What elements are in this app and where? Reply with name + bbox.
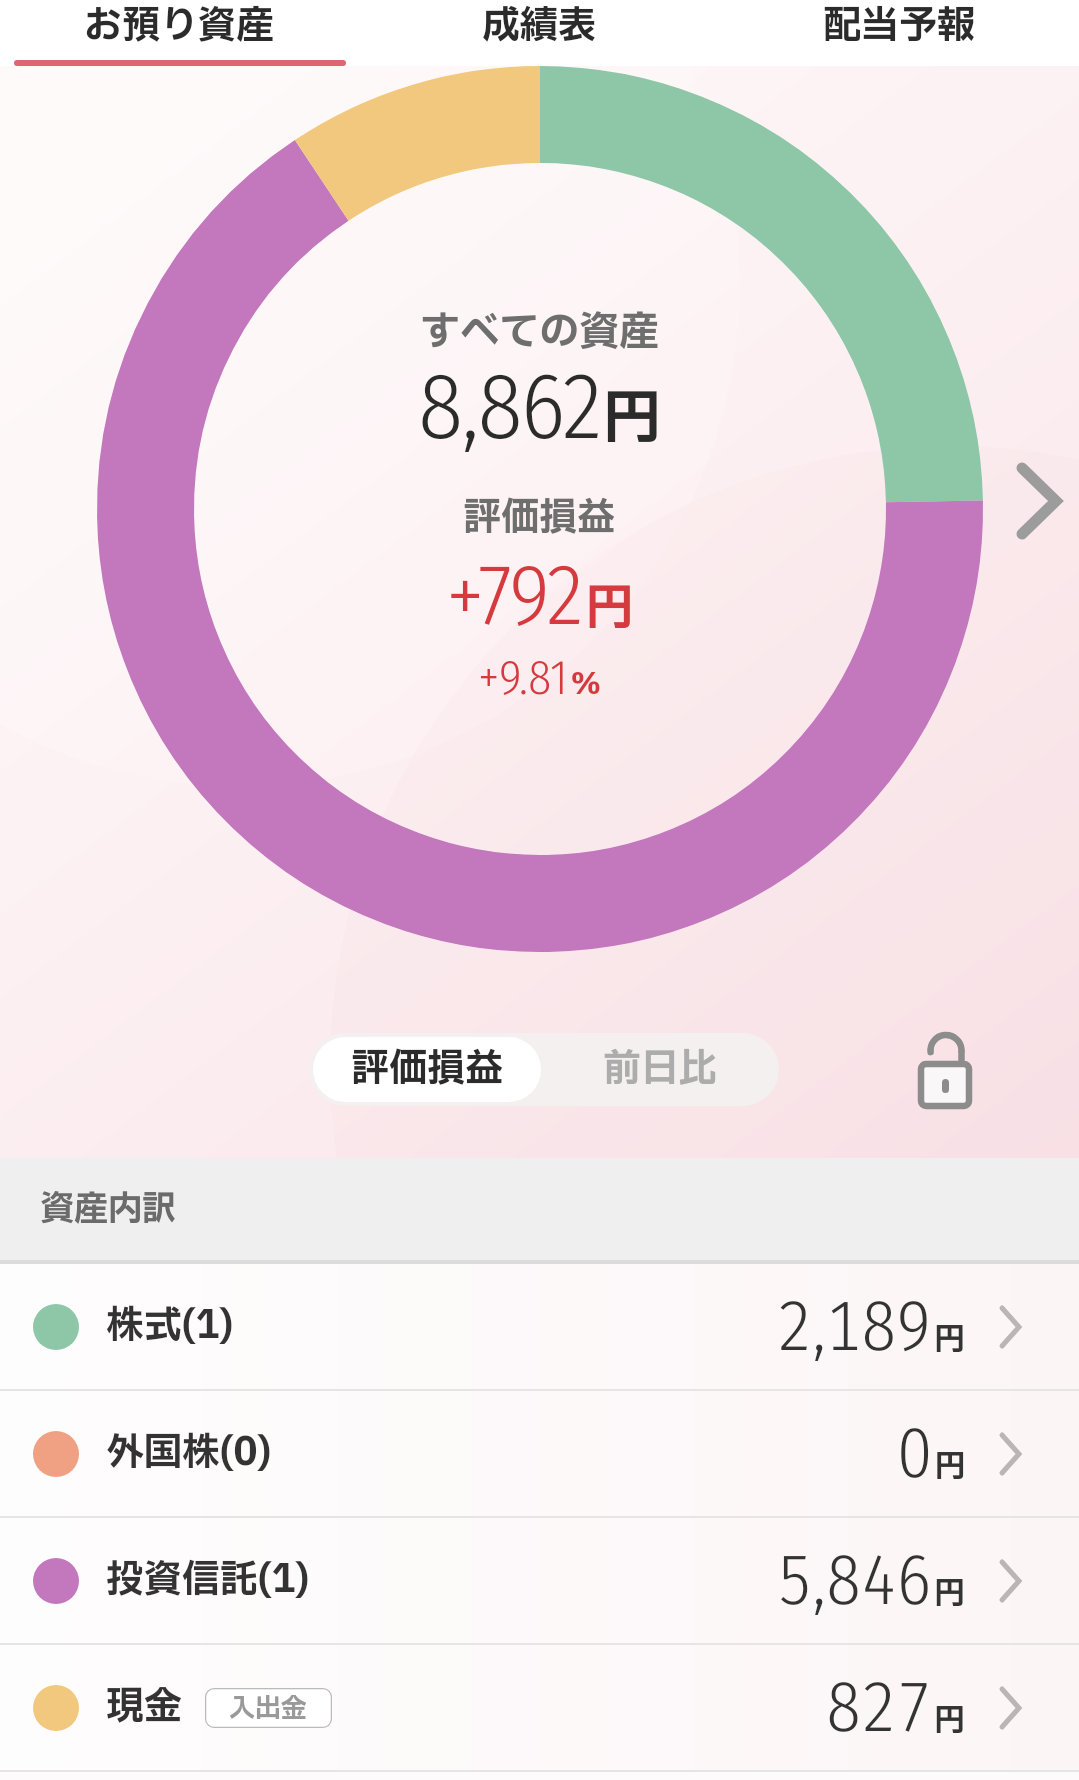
staticText: 5,846 円 [777, 1539, 966, 1623]
staticText: 外国株(0) [106, 1425, 271, 1482]
button[interactable]: 前日比 [541, 1033, 779, 1106]
button[interactable]: 評価損益 [313, 1037, 541, 1102]
staticText: 株式(1) [106, 1298, 233, 1355]
staticText: 成績表 [482, 0, 597, 55]
button[interactable]: 成績表 [359, 0, 719, 66]
staticText: 現金 [106, 1679, 183, 1736]
staticText: 評価損益 [463, 490, 616, 547]
staticText: 前日比 [603, 1041, 718, 1098]
staticText: 8,862 円 [418, 351, 662, 463]
staticText: 投資信託(1) [106, 1552, 309, 1609]
staticText: 評価損益 [351, 1041, 504, 1098]
button[interactable]: お預り資産 [0, 0, 359, 66]
button[interactable]: 配当予報 [719, 0, 1079, 66]
button[interactable]: 投資信託(1) [0, 1518, 1079, 1643]
staticText: 827 円 [826, 1666, 966, 1750]
staticText: お預り資産 [84, 0, 275, 55]
staticText: 入出金 [229, 1689, 308, 1728]
staticText: 0 円 [897, 1412, 966, 1496]
button[interactable]: 株式(1) [0, 1264, 1079, 1389]
staticText: 配当予報 [823, 0, 976, 55]
staticText: すべての資産 [420, 303, 660, 363]
staticText: +9.81 % [478, 649, 602, 707]
staticText: +792 円 [446, 544, 634, 647]
button[interactable]: 現金 [0, 1645, 1079, 1770]
button[interactable] [918, 1035, 972, 1107]
staticText: 資産内訳 [40, 1184, 176, 1235]
button[interactable] [1016, 462, 1064, 540]
button[interactable]: 外国株(0) [0, 1391, 1079, 1516]
staticText: 2,189 円 [777, 1285, 966, 1369]
